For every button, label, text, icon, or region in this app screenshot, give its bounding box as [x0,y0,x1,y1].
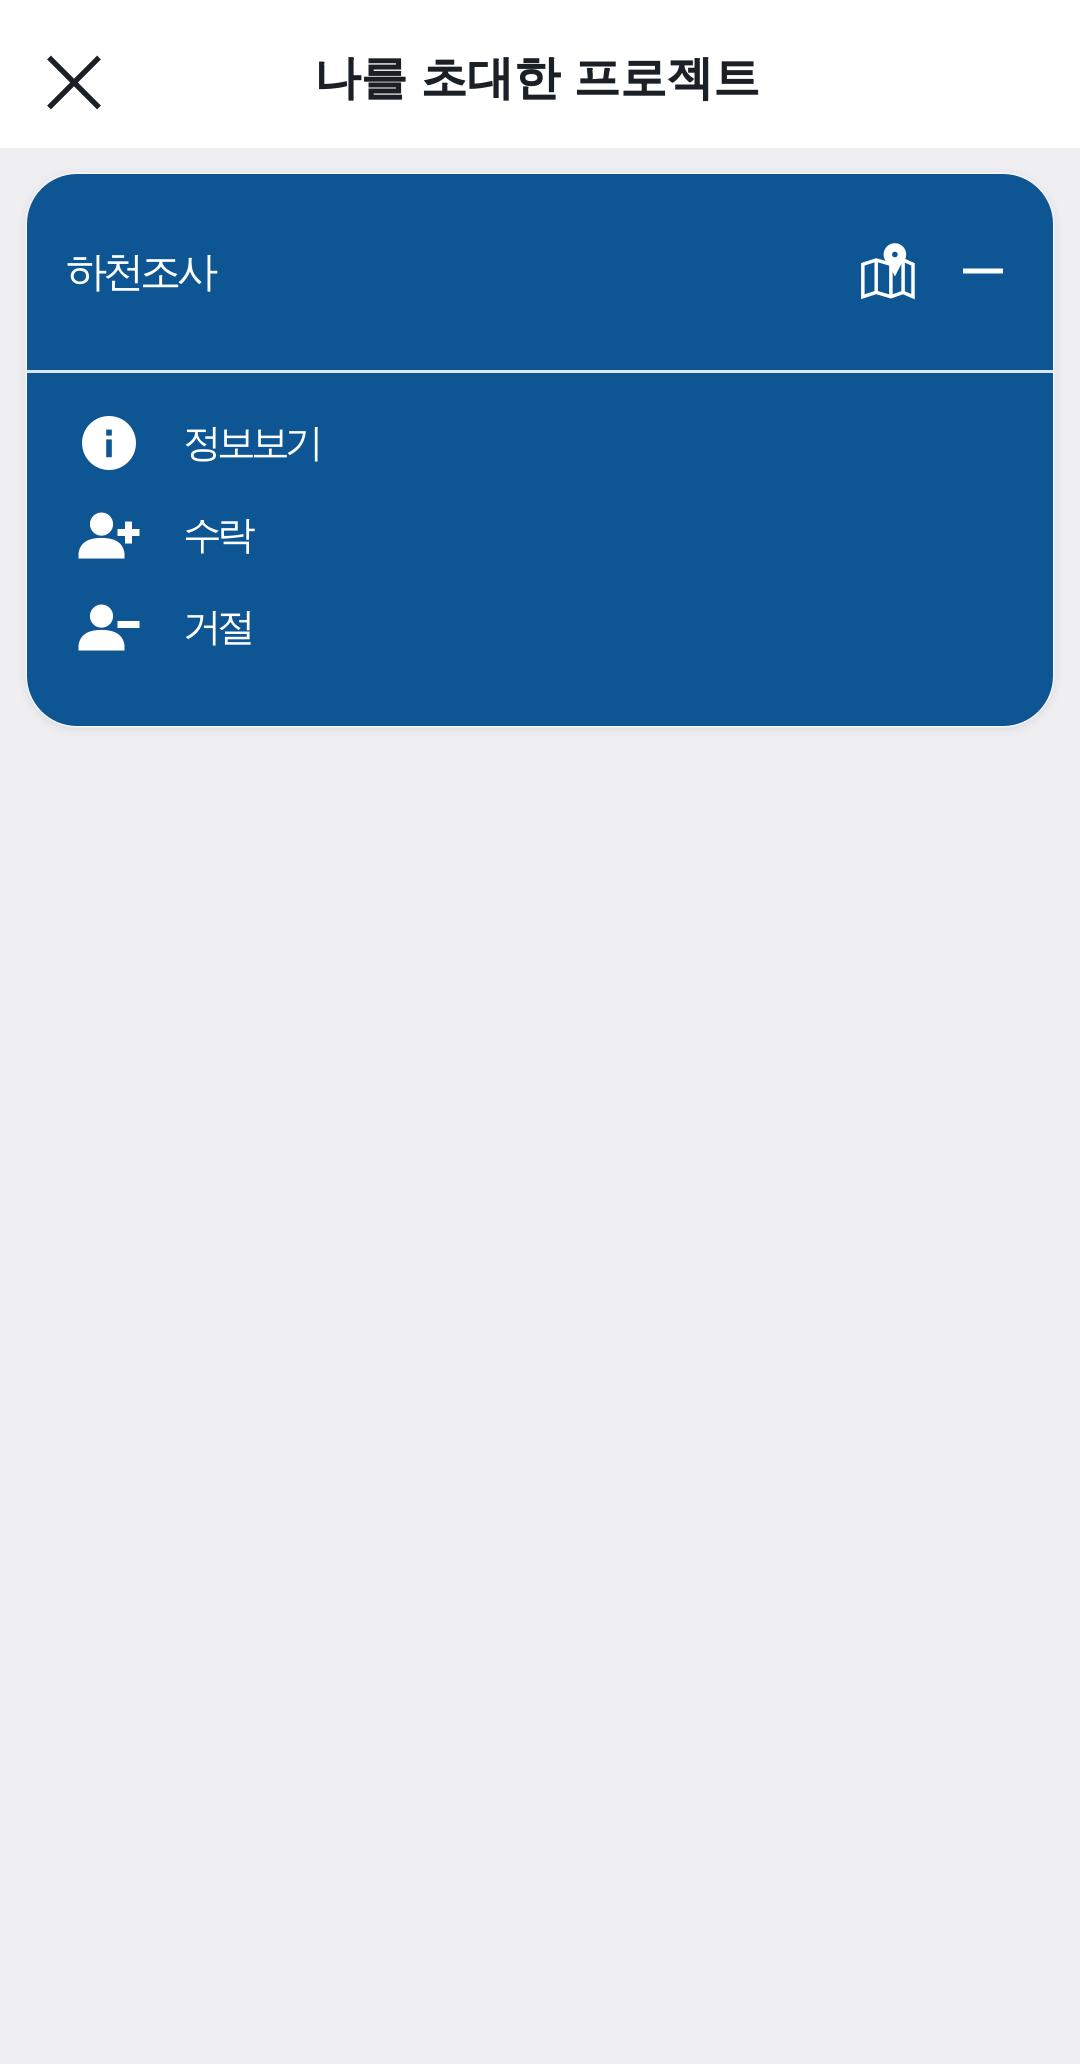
button[interactable]: Close [26,34,122,130]
staticText: 나를 초대한 프로젝트 [314,50,760,107]
staticText: 하천조사 [66,247,218,297]
button[interactable]: 하천조사 [27,174,830,370]
button[interactable]: 수락 [27,489,1053,581]
staticText: 거절 [183,603,256,651]
button[interactable]: Map [851,235,925,309]
staticText: 정보보기 [183,419,324,467]
button[interactable]: Collapse [946,235,1020,309]
button[interactable]: 거절 [27,581,1053,673]
button[interactable]: 정보보기 [27,397,1053,489]
staticText: 수락 [183,511,256,559]
